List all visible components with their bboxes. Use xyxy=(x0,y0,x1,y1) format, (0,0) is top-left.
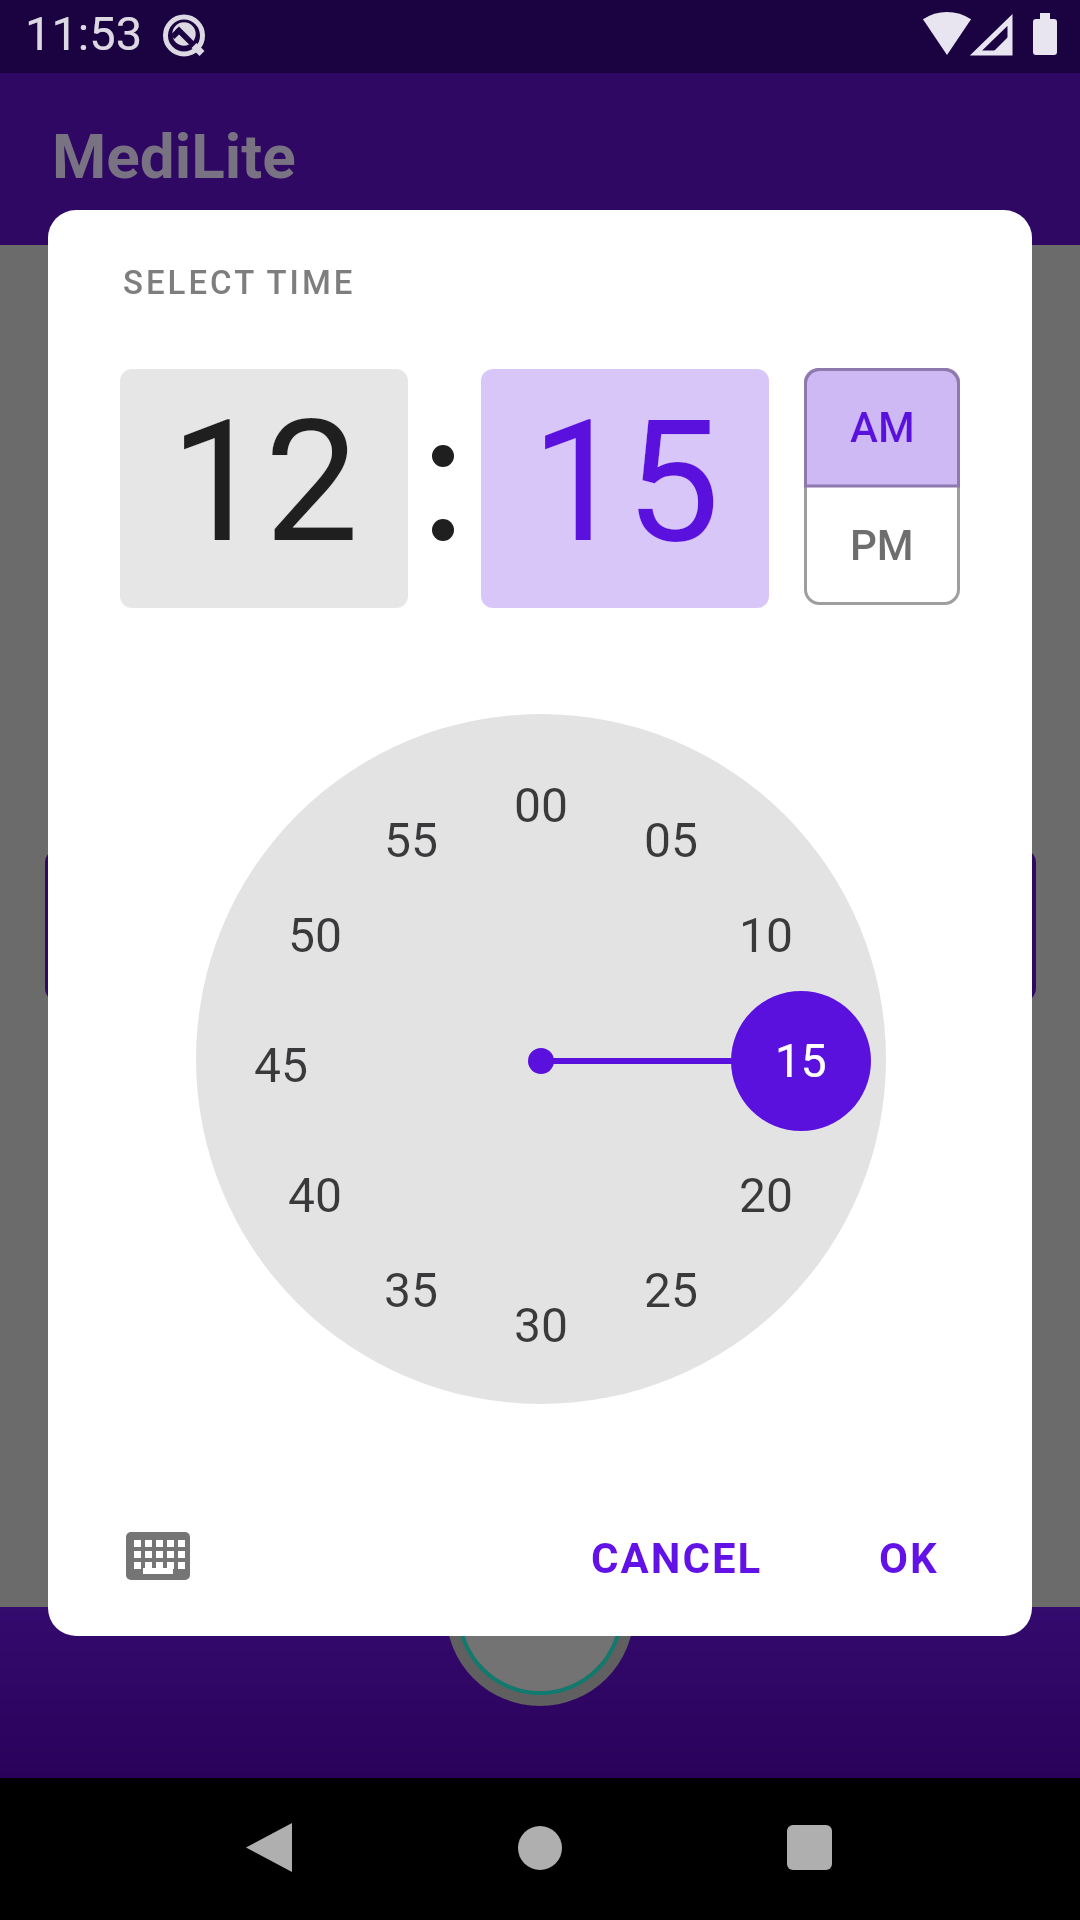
button[interactable]: 35 xyxy=(371,1250,451,1330)
staticText: PM xyxy=(850,521,914,570)
staticText: 10 xyxy=(739,907,793,963)
staticText: 15 xyxy=(531,384,720,581)
button[interactable]: 12 xyxy=(120,369,408,608)
button[interactable]: 40 xyxy=(275,1155,355,1235)
staticText: 40 xyxy=(288,1167,342,1223)
button[interactable]: 15 xyxy=(481,369,769,608)
button[interactable]: 50 xyxy=(275,895,355,975)
staticText: 55 xyxy=(384,812,438,868)
staticText: SELECT TIME xyxy=(123,263,356,302)
button[interactable]: 20 xyxy=(726,1155,806,1235)
button[interactable]: AM xyxy=(804,368,960,486)
staticText: 05 xyxy=(644,812,698,868)
button[interactable]: 30 xyxy=(501,1285,581,1365)
staticText: 11:53 xyxy=(25,6,143,61)
staticText: 35 xyxy=(384,1262,438,1318)
button[interactable]: 55 xyxy=(371,800,451,880)
staticText: 15 xyxy=(775,1034,827,1088)
staticText: OK xyxy=(879,1534,939,1583)
button[interactable]: CANCEL xyxy=(569,1518,785,1598)
button[interactable]: OK xyxy=(849,1518,969,1598)
staticText: MediLite xyxy=(52,120,296,193)
staticText: 12 xyxy=(170,384,359,581)
button[interactable] xyxy=(118,1516,198,1596)
staticText: 30 xyxy=(514,1297,568,1353)
staticText: CANCEL xyxy=(591,1534,763,1583)
staticText: AM xyxy=(850,403,915,452)
button[interactable]: 15 xyxy=(731,991,871,1131)
button[interactable]: 10 xyxy=(726,895,806,975)
staticText: 50 xyxy=(288,907,342,963)
staticText: 25 xyxy=(644,1262,698,1318)
button[interactable]: 05 xyxy=(631,800,711,880)
staticText: 00 xyxy=(514,777,568,833)
staticText: 20 xyxy=(739,1167,793,1223)
button[interactable]: 25 xyxy=(631,1250,711,1330)
staticText: 45 xyxy=(254,1037,308,1093)
button[interactable]: PM xyxy=(804,486,960,605)
button[interactable]: 45 xyxy=(241,1025,321,1105)
button[interactable]: 00 xyxy=(501,765,581,845)
